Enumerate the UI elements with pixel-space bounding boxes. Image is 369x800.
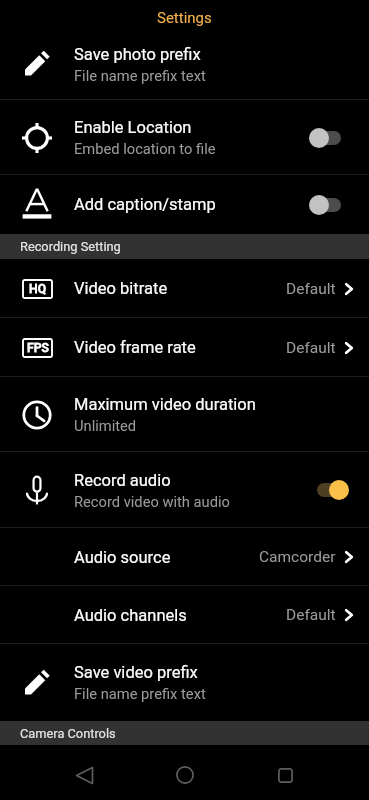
button[interactable]: Save photo prefix — [0, 28, 369, 100]
staticText: Video bitrate — [74, 279, 168, 298]
button[interactable]: FPS — [0, 318, 369, 377]
staticText: FPS — [27, 341, 49, 355]
button[interactable]: Audio channels — [0, 586, 369, 644]
button[interactable]: Maximum video duration — [0, 377, 369, 452]
button[interactable]: On — [309, 479, 349, 501]
button[interactable]: HQ — [0, 259, 369, 318]
staticText: Default — [286, 280, 336, 298]
button[interactable]: Save video prefix — [0, 644, 369, 721]
staticText: Recording Setting — [20, 239, 121, 254]
staticText: Video frame rate — [74, 338, 196, 357]
staticText: Camcorder — [259, 548, 336, 566]
staticText: HQ — [29, 282, 47, 296]
staticText: Save photo prefix — [74, 45, 201, 64]
staticText: Save video prefix — [74, 663, 198, 682]
staticText: File name prefix text — [74, 685, 206, 702]
button[interactable]: Enable Location — [0, 100, 369, 175]
staticText: Camera Controls — [20, 726, 116, 741]
button[interactable]: Off — [309, 127, 349, 149]
staticText: Audio source — [74, 548, 171, 567]
button[interactable]: Home — [161, 751, 209, 799]
staticText: Embed location to file — [74, 140, 216, 157]
button[interactable]: Add caption/stamp — [0, 175, 369, 234]
staticText: Add caption/stamp — [74, 195, 216, 214]
staticText: File name prefix text — [74, 67, 206, 84]
button[interactable]: Audio source — [0, 528, 369, 586]
staticText: Enable Location — [74, 118, 192, 137]
button[interactable]: Record audio — [0, 452, 369, 528]
staticText: Maximum video duration — [74, 395, 256, 414]
staticText: Audio channels — [74, 606, 187, 625]
button[interactable]: Recents — [261, 751, 309, 799]
staticText: Default — [286, 339, 336, 357]
button[interactable]: Off — [309, 194, 349, 216]
staticText: Default — [286, 606, 336, 624]
staticText: Record video with audio — [74, 493, 230, 510]
button[interactable]: Back — [60, 751, 108, 799]
staticText: Unlimited — [74, 417, 137, 434]
staticText: Settings — [157, 9, 212, 27]
staticText: Record audio — [74, 471, 171, 490]
